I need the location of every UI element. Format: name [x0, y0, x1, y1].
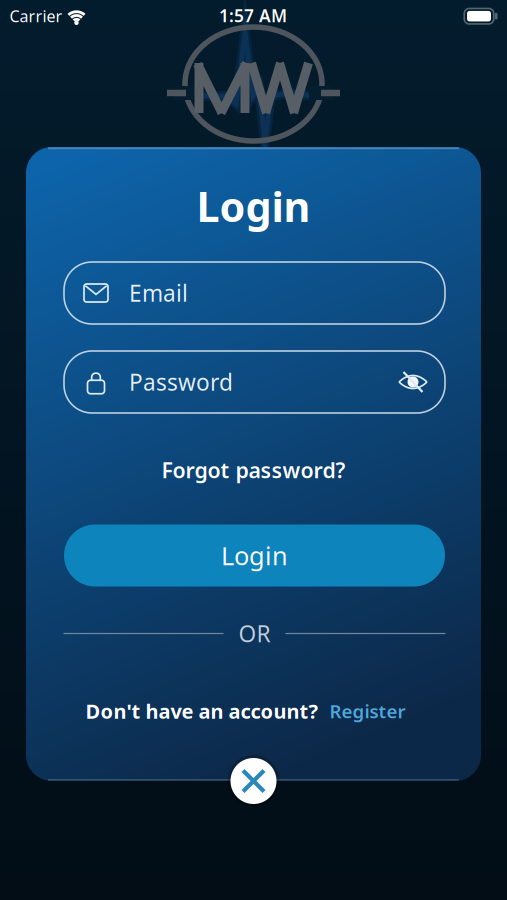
staticText: Don't have an account? — [85, 698, 318, 724]
staticText: Register — [329, 699, 405, 723]
staticText: Carrier — [9, 5, 62, 27]
staticText: Login — [196, 179, 310, 233]
button[interactable]: Email — [64, 262, 445, 324]
button[interactable]: Register — [329, 699, 405, 723]
staticText: Password — [129, 367, 233, 397]
button[interactable]: Forgot password? — [161, 456, 345, 484]
staticText: 1:57 AM — [219, 4, 287, 27]
button[interactable] — [398, 369, 428, 395]
button[interactable]: Login — [64, 524, 445, 586]
staticText: Email — [129, 278, 188, 308]
button[interactable]: Password — [64, 351, 445, 413]
staticText: Login — [221, 539, 288, 572]
button[interactable] — [227, 755, 279, 807]
staticText: Forgot password? — [161, 456, 345, 484]
staticText: OR — [238, 618, 270, 648]
